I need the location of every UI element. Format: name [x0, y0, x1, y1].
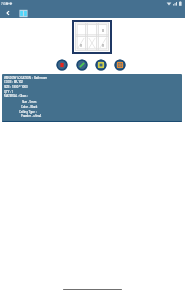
staticText: MATERIAL : Glass : — [4, 94, 28, 98]
button[interactable]: Back — [2, 7, 13, 18]
button[interactable]: Duplicate — [95, 59, 107, 71]
button[interactable]: Delete — [56, 59, 68, 71]
button[interactable]: Window — [18, 8, 28, 18]
staticText: Ceiling Type : — [19, 110, 37, 114]
staticText: WINDOW LOCATION : Bathroom — [4, 76, 48, 80]
staticText: SIZE : 1800 * 1000 — [4, 85, 28, 89]
staticText: CODE : BR-102 — [4, 80, 23, 84]
staticText: 7:04 — [1, 2, 7, 6]
staticText: Color - Black — [21, 105, 38, 109]
staticText: Powder - ultra4 — [21, 114, 42, 118]
button[interactable]: Details — [114, 59, 126, 71]
button[interactable]: Edit — [76, 59, 88, 71]
staticText: Size - 5mm — [22, 100, 37, 104]
staticText: QTY : 1 — [4, 90, 14, 94]
